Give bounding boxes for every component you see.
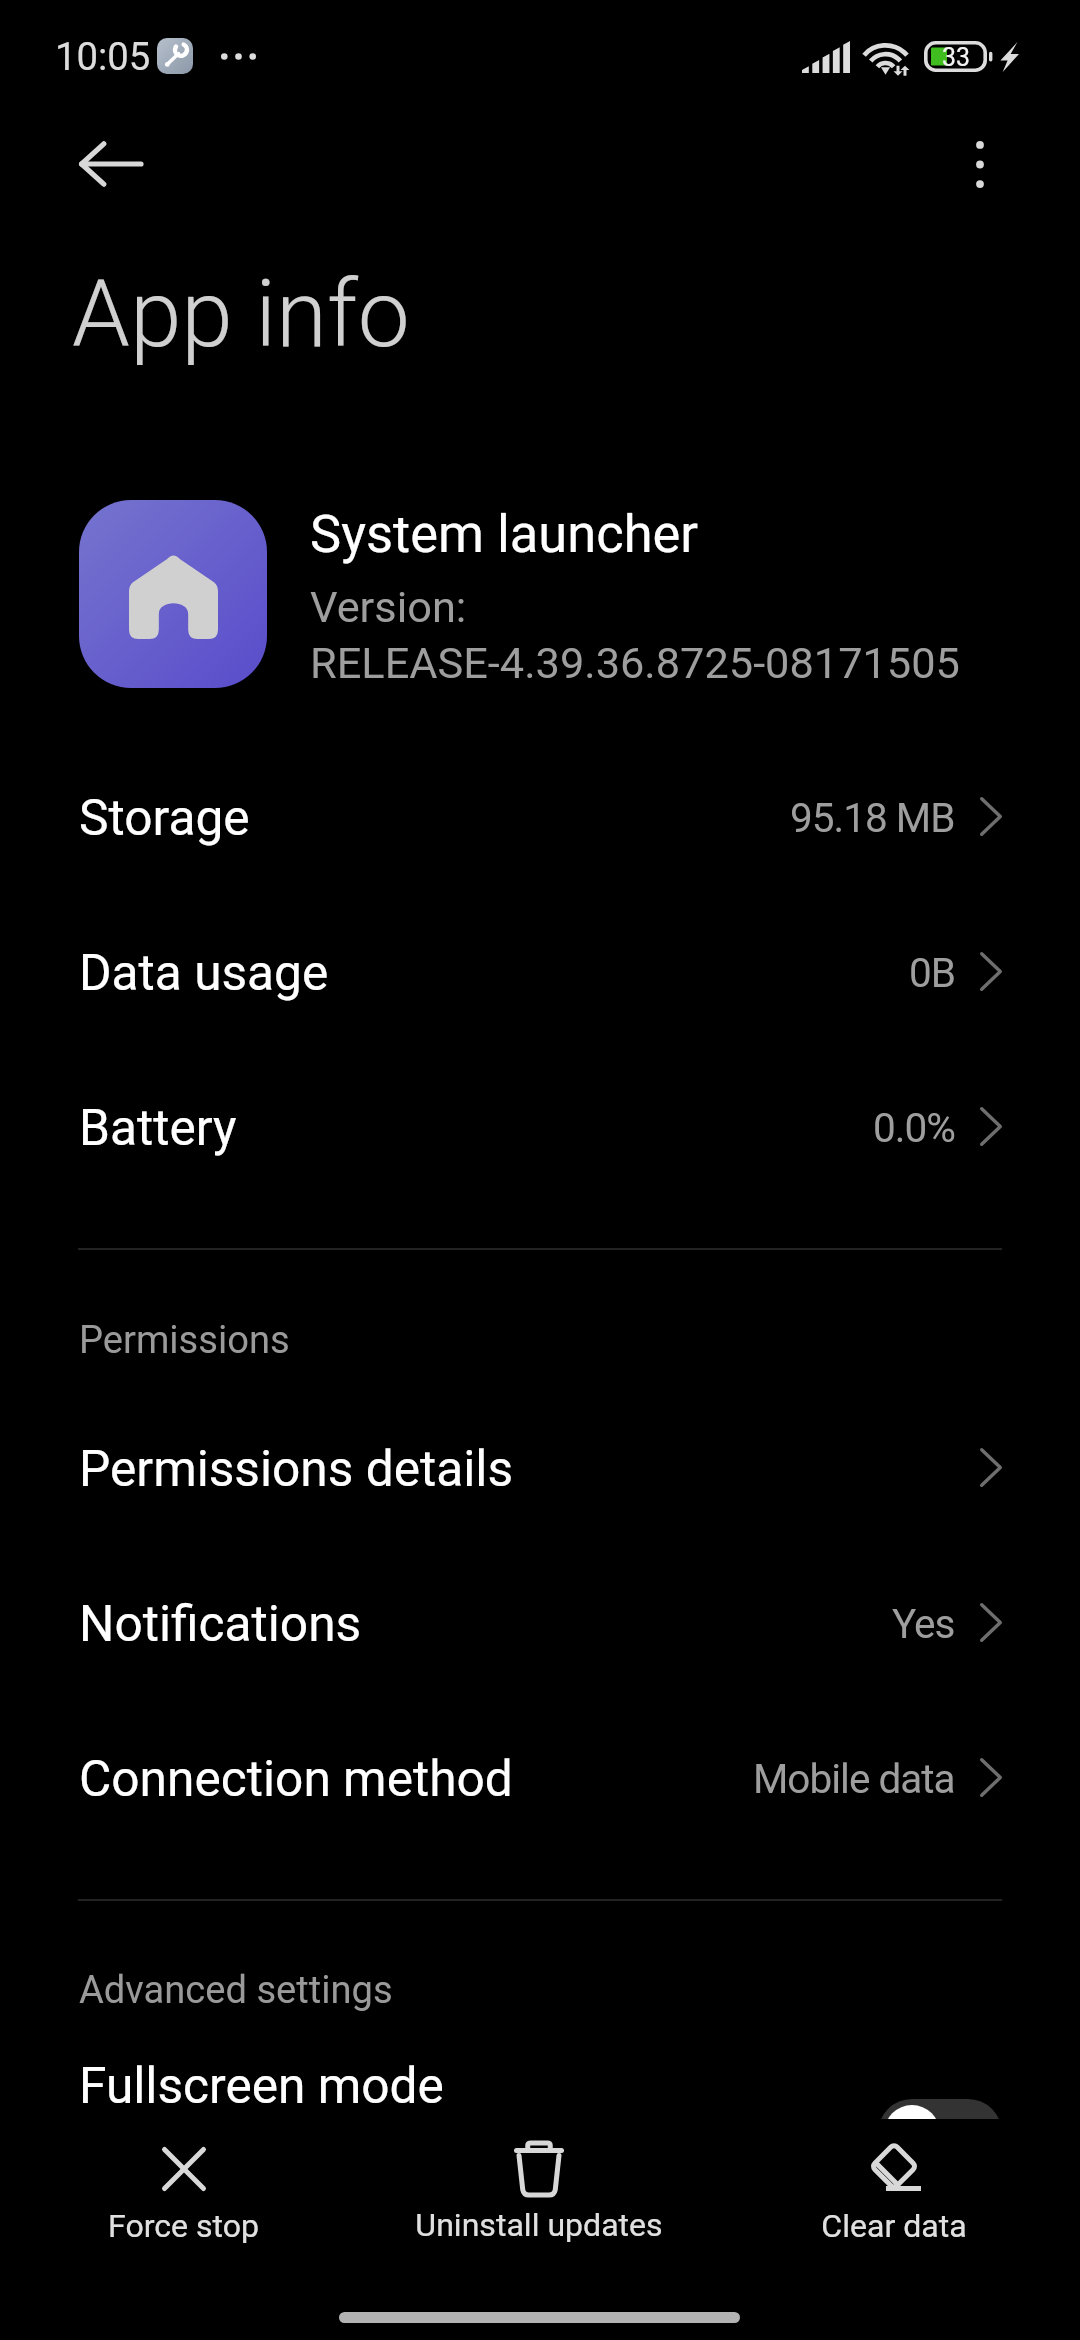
staticText: Fullscreen mode bbox=[79, 2057, 444, 2115]
staticText: 95.18 MB bbox=[790, 794, 955, 841]
staticText: Notifications bbox=[79, 1595, 362, 1653]
staticText: 33 bbox=[942, 43, 970, 72]
staticText: Advanced settings bbox=[79, 1968, 393, 2013]
button[interactable]: Clear data bbox=[716, 2119, 1071, 2245]
button[interactable]: Back bbox=[58, 112, 162, 216]
button[interactable]: Uninstall updates bbox=[361, 2119, 716, 2244]
button[interactable]: Storage bbox=[0, 739, 1080, 894]
staticText: Yes bbox=[892, 1600, 955, 1647]
staticText: Force stop bbox=[108, 2207, 259, 2245]
staticText: Permissions details bbox=[79, 1440, 514, 1498]
staticText: Connection method bbox=[79, 1750, 513, 1808]
staticText: Uninstall updates bbox=[415, 2206, 663, 2244]
button[interactable]: Fullscreen mode bbox=[0, 2007, 1080, 2162]
staticText: Data usage bbox=[79, 944, 329, 1002]
button[interactable]: Force stop bbox=[6, 2119, 361, 2245]
button[interactable]: Battery bbox=[0, 1049, 1080, 1204]
staticText: Storage bbox=[79, 789, 250, 847]
staticText: System launcher bbox=[310, 503, 699, 564]
button[interactable]: Data usage bbox=[0, 894, 1080, 1049]
button[interactable]: More options bbox=[928, 112, 1032, 216]
staticText: RELEASE-4.39.36.8725-08171505 bbox=[310, 638, 960, 689]
staticText: Mobile data bbox=[753, 1755, 955, 1802]
button[interactable]: Connection method bbox=[0, 1700, 1080, 1855]
staticText: Version: bbox=[310, 582, 467, 633]
staticText: 0.0% bbox=[873, 1104, 955, 1151]
staticText: Permissions bbox=[79, 1318, 290, 1363]
staticText: 10:05 bbox=[55, 35, 151, 80]
staticText: Clear data bbox=[821, 2207, 967, 2245]
button[interactable]: Permissions details bbox=[0, 1390, 1080, 1545]
button[interactable]: Notifications bbox=[0, 1545, 1080, 1700]
staticText: Battery bbox=[79, 1099, 237, 1157]
staticText: App info bbox=[72, 260, 410, 369]
staticText: 0B bbox=[909, 949, 955, 996]
